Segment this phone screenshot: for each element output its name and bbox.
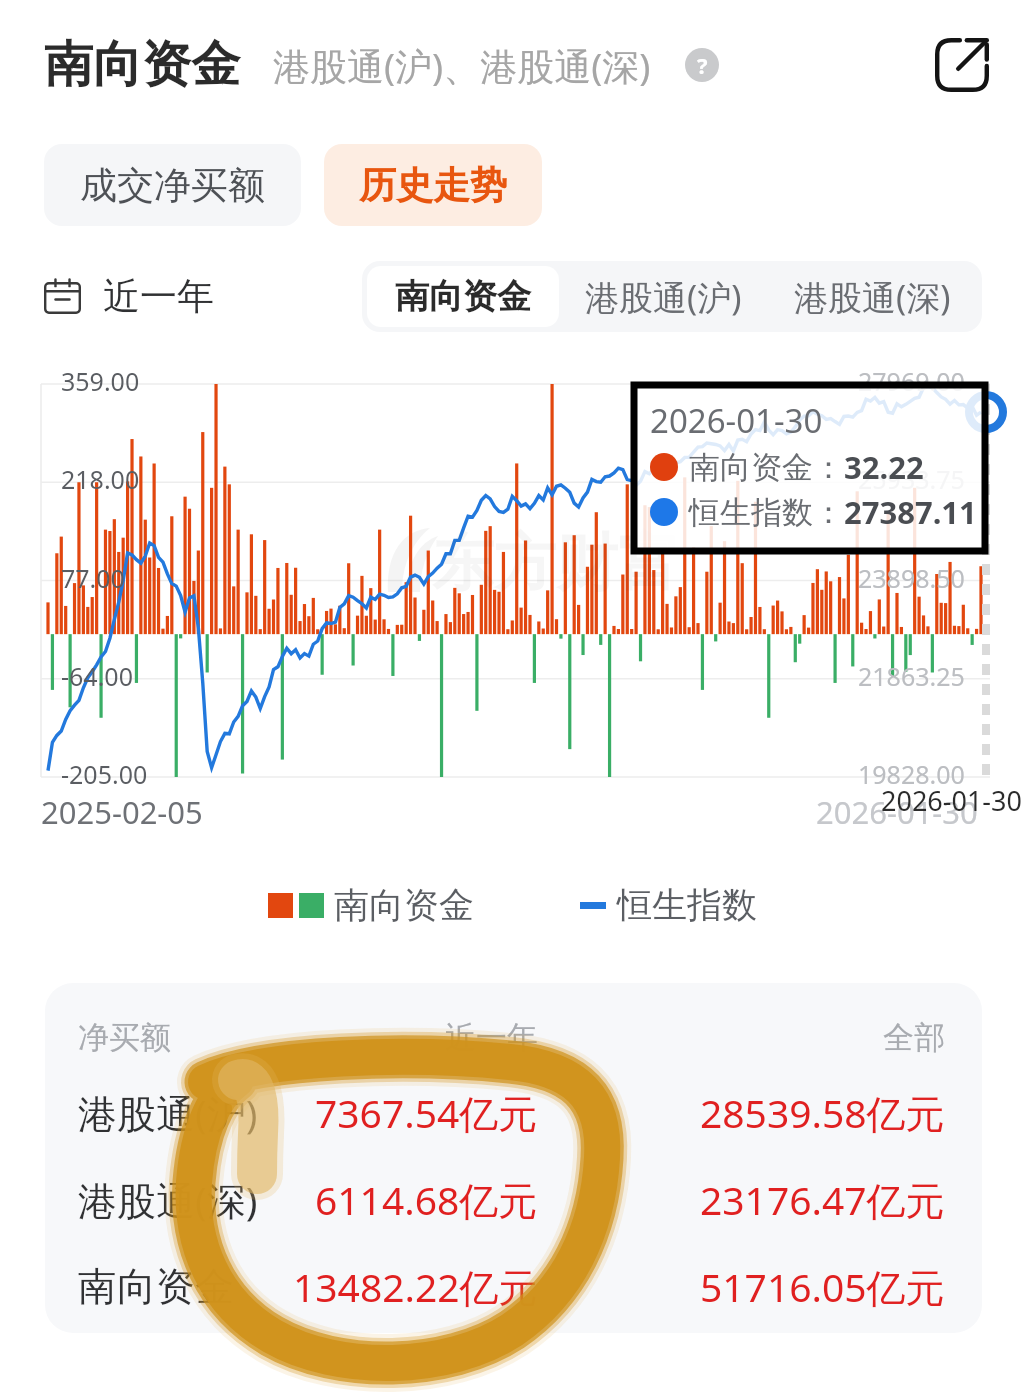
button[interactable]: 港股通(沪) xyxy=(45,1069,982,1156)
staticText: 2025-02-05 xyxy=(41,791,203,833)
button[interactable]: 南向资金 xyxy=(367,266,559,327)
button[interactable]: 历史走势 xyxy=(324,144,542,226)
staticText: 南向资金 xyxy=(334,883,474,927)
staticText: 恒生指数 xyxy=(617,883,757,927)
staticText: 19828.00 xyxy=(858,757,965,791)
button[interactable]: 港股通(深) xyxy=(768,266,977,327)
staticText: 6114.68亿元 xyxy=(315,1173,538,1226)
staticText: ? xyxy=(697,50,708,80)
button[interactable]: 港股通(深) xyxy=(45,1156,982,1243)
staticText: 218.00 xyxy=(61,462,140,496)
button[interactable]: Open in new window xyxy=(917,20,1007,110)
staticText: 2026-01-30 xyxy=(816,791,978,833)
staticText: 成交净买额 xyxy=(80,162,265,209)
button[interactable]: 南向资金 xyxy=(45,1243,982,1330)
staticText: -64.00 xyxy=(61,659,133,693)
staticText: 南向资金 xyxy=(78,1262,234,1311)
staticText: 13482.22亿元 xyxy=(293,1260,538,1313)
staticText: 净买额 xyxy=(78,1018,171,1057)
button[interactable]: 近一年 xyxy=(44,273,214,320)
staticText: 2026-01-30 xyxy=(650,398,823,443)
staticText: 359.00 xyxy=(61,364,140,398)
staticText: -205.00 xyxy=(61,757,148,791)
staticText: 近一年 xyxy=(103,273,214,320)
staticText: 32.22 xyxy=(844,446,924,488)
staticText: 23176.47亿元 xyxy=(700,1173,945,1226)
staticText: 港股通(沪)、港股通(深) xyxy=(273,40,651,91)
staticText: 恒生指数： xyxy=(689,493,844,532)
staticText: 港股通(沪) xyxy=(78,1086,258,1139)
staticText: 51716.05亿元 xyxy=(700,1260,945,1313)
staticText: 25933.75 xyxy=(858,462,965,496)
staticText: 港股通(深) xyxy=(794,274,951,320)
staticText: 港股通(沪) xyxy=(585,274,742,320)
staticText: 南向资金： xyxy=(689,448,844,487)
staticText: 全部 xyxy=(883,1018,945,1057)
staticText: 28539.58亿元 xyxy=(700,1086,945,1139)
staticText: 23898.50 xyxy=(858,561,965,595)
staticText: 近一年 xyxy=(445,1018,538,1057)
staticText: 21863.25 xyxy=(858,659,965,693)
staticText: 27387.11 xyxy=(844,491,977,533)
staticText: 东方财富 xyxy=(432,524,680,602)
staticText: 港股通(深) xyxy=(78,1173,258,1226)
staticText: 南向资金 xyxy=(44,34,240,96)
button[interactable]: 港股通(沪) xyxy=(559,266,768,327)
staticText: 27969.00 xyxy=(858,364,965,398)
staticText: 77.00 xyxy=(61,561,125,595)
button[interactable]: 成交净买额 xyxy=(44,144,301,226)
staticText: 历史走势 xyxy=(359,162,507,209)
staticText: 2026-01-30 xyxy=(881,782,1022,819)
staticText: 南向资金 xyxy=(395,275,531,318)
button[interactable]: Help xyxy=(685,48,719,82)
staticText: 7367.54亿元 xyxy=(315,1086,538,1139)
